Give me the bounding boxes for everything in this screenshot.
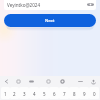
button[interactable]: 6	[49, 87, 59, 99]
staticText: 2	[13, 91, 16, 97]
button[interactable]: Password	[4, 0, 96, 10]
button[interactable]: GIF	[27, 77, 36, 86]
button[interactable]: More	[76, 77, 85, 86]
button[interactable]: Show password	[86, 0, 94, 8]
staticText: 3	[23, 91, 26, 97]
button[interactable]: Clipboard	[14, 77, 23, 86]
button[interactable]: 9	[79, 87, 89, 99]
button[interactable]: 5	[39, 87, 49, 99]
staticText: 6	[53, 91, 56, 97]
button[interactable]: 4	[29, 87, 39, 99]
staticText: 7	[63, 91, 66, 97]
button[interactable]: 1	[1, 87, 10, 99]
button[interactable]: Stickers	[44, 77, 53, 86]
button[interactable]: Next	[4, 14, 96, 27]
button[interactable]: Voice input	[89, 77, 98, 86]
button[interactable]: 3	[19, 87, 29, 99]
staticText: 4	[33, 91, 36, 97]
staticText: Veyintko@2024	[7, 2, 41, 8]
staticText: 1	[4, 91, 7, 97]
button[interactable]: 0	[89, 87, 99, 99]
staticText: 0	[93, 91, 96, 97]
staticText: 8	[73, 91, 76, 97]
button[interactable]: Collapse toolbar	[2, 77, 11, 86]
staticText: 9	[83, 91, 86, 97]
button[interactable]: 8	[69, 87, 79, 99]
button[interactable]: 7	[59, 87, 69, 99]
staticText: Next	[45, 18, 55, 24]
button[interactable]: 2	[10, 87, 19, 99]
button[interactable]: Settings	[58, 77, 67, 86]
staticText: 5	[43, 91, 46, 97]
